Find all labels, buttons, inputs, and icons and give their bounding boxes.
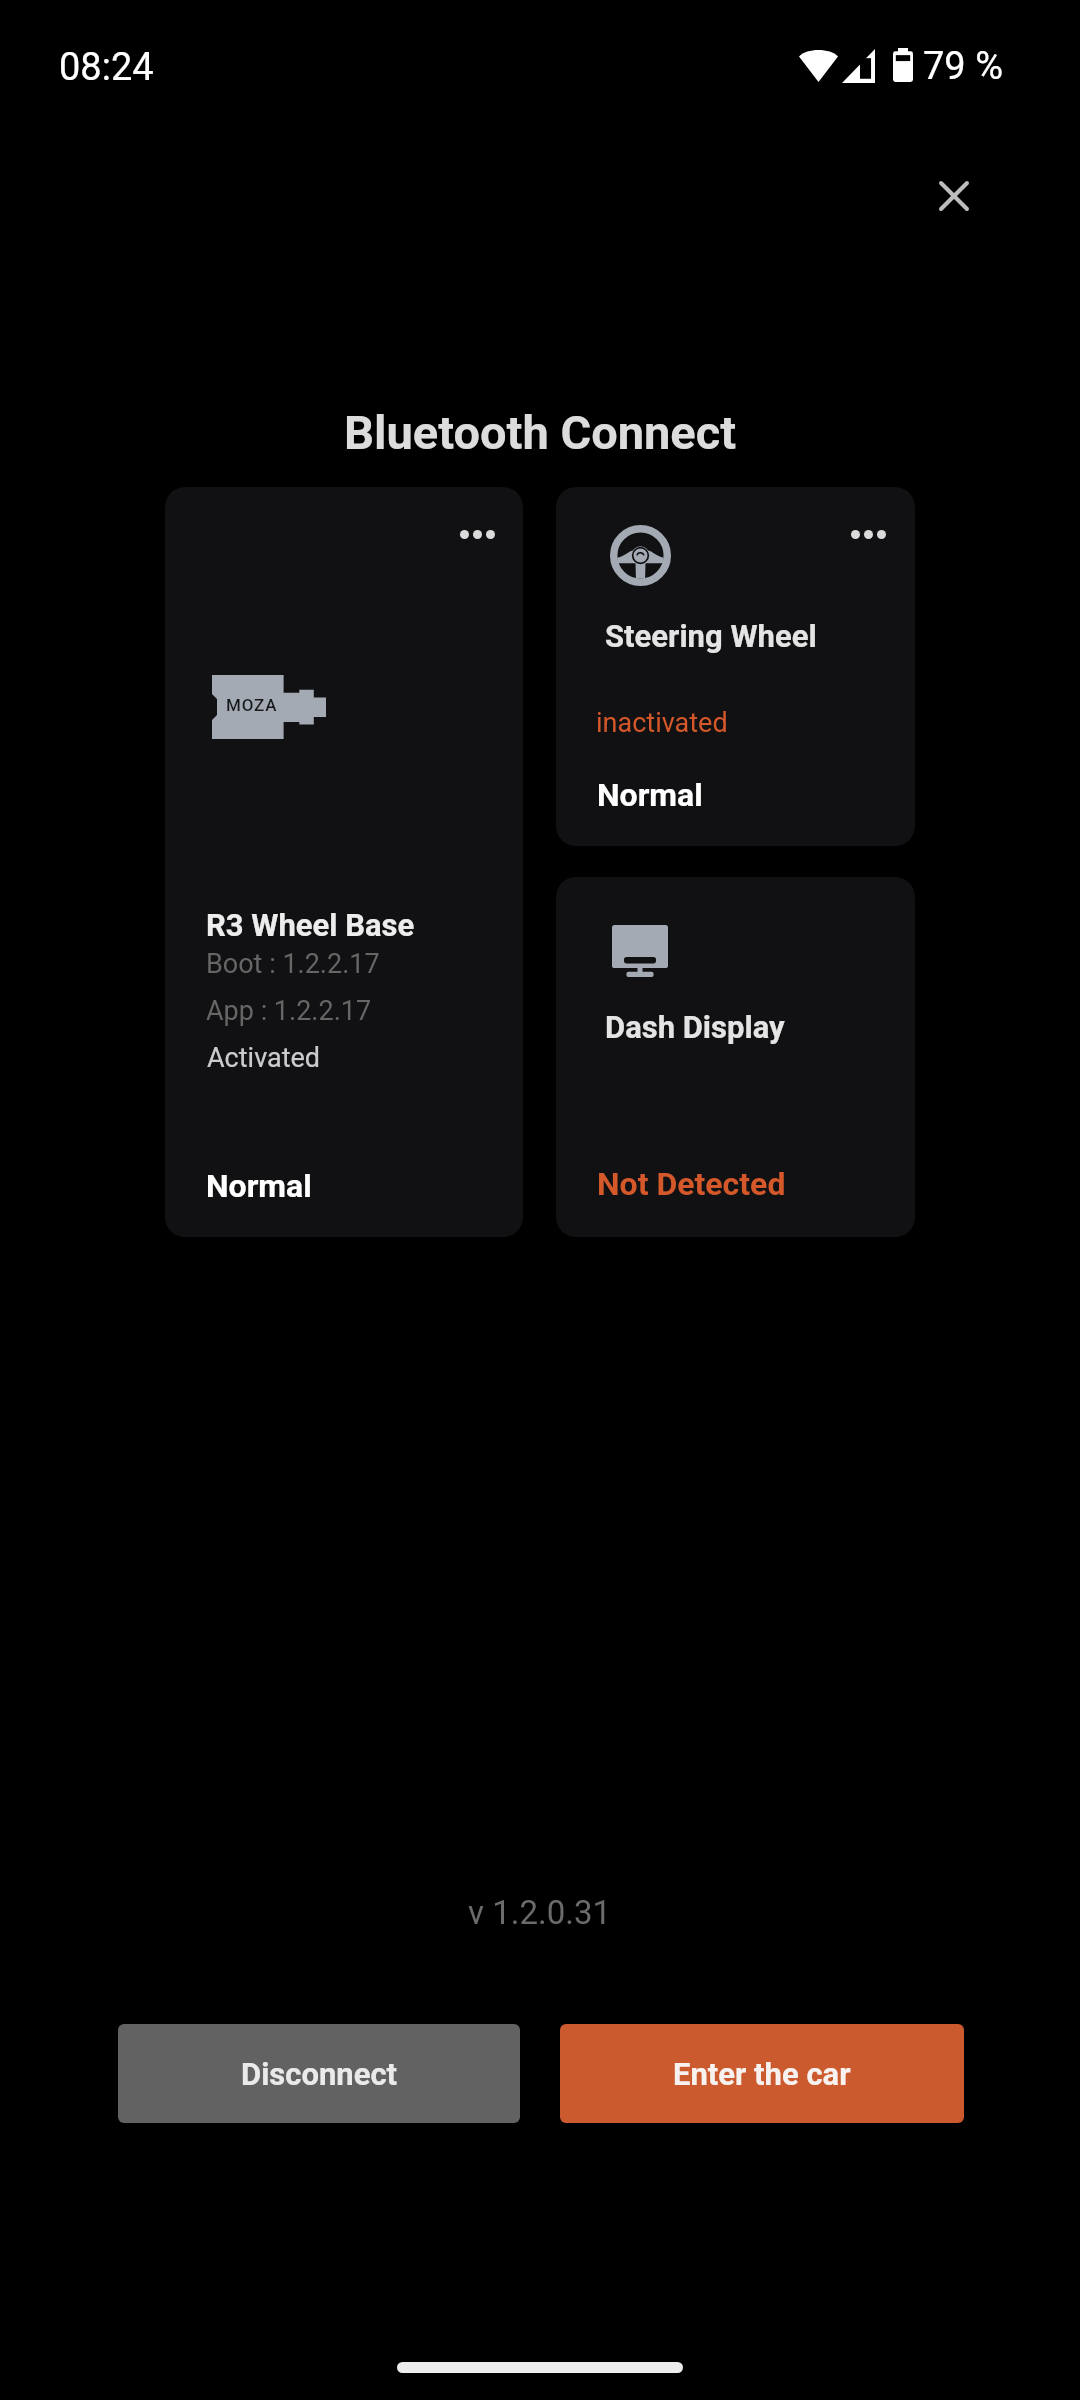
button[interactable]: Close [909, 151, 998, 240]
button[interactable]: More options [556, 487, 915, 846]
staticText: Normal [206, 1167, 312, 1205]
staticText: 08:24 [59, 45, 154, 90]
staticText: R3 Wheel Base [206, 907, 415, 943]
button[interactable]: More options [447, 504, 507, 564]
staticText: Not Detected [597, 1165, 786, 1203]
staticText: App : 1.2.2.17 [206, 995, 372, 1027]
staticText: Steering Wheel [605, 618, 817, 654]
staticText: Dash Display [605, 1009, 785, 1045]
button[interactable]: Dash Display [556, 877, 915, 1237]
staticText: 79 % [923, 44, 1003, 89]
staticText: Boot : 1.2.2.17 [206, 948, 380, 980]
button[interactable]: Enter the car [560, 2024, 964, 2123]
staticText: inactivated [596, 707, 728, 739]
button[interactable]: Disconnect [118, 2024, 520, 2123]
button[interactable]: More options [165, 487, 523, 1237]
staticText: Enter the car [673, 2056, 851, 2092]
staticText: Bluetooth Connect [344, 405, 737, 460]
staticText: Disconnect [241, 2056, 398, 2092]
staticText: Activated [207, 1042, 321, 1074]
button[interactable]: More options [838, 504, 898, 564]
staticText: v 1.2.0.31 [468, 1893, 612, 1932]
staticText: Normal [597, 776, 703, 814]
staticText: MOZA [226, 695, 278, 715]
